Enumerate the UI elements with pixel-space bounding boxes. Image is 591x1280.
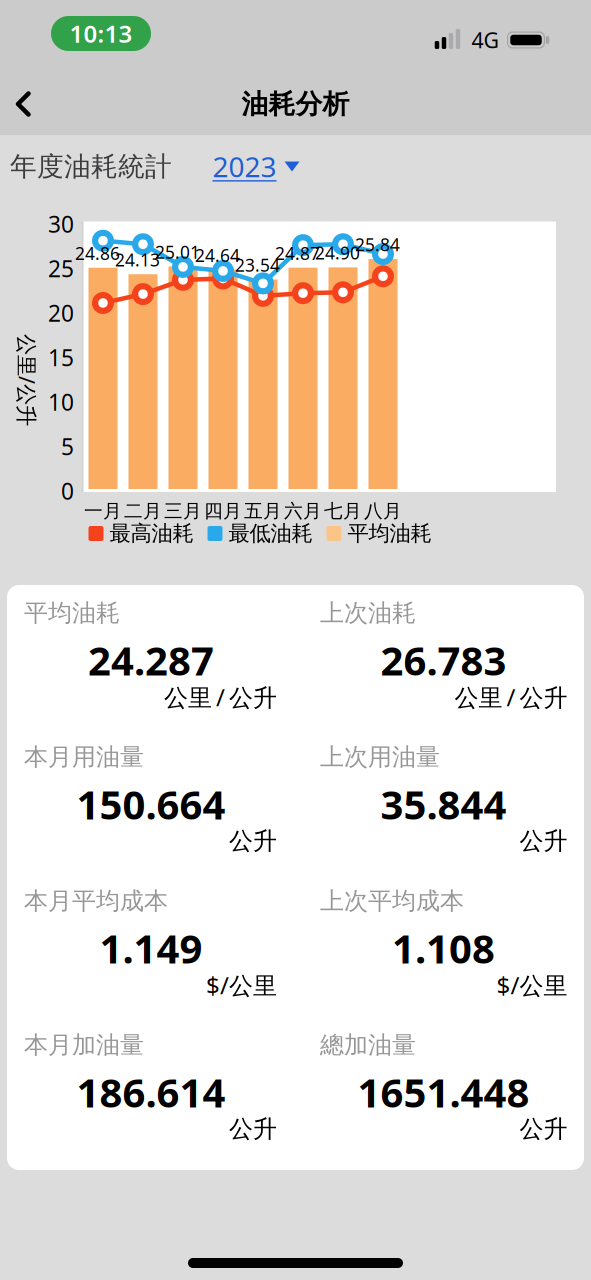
- staticText: 4G: [471, 26, 499, 54]
- staticText: 25.01: [155, 240, 200, 263]
- staticText: 公里 / 公升: [454, 681, 567, 713]
- staticText: 24.86: [75, 242, 120, 265]
- staticText: 本月用油量: [24, 742, 144, 772]
- staticText: 六月: [284, 499, 322, 522]
- staticText: 油耗分析: [241, 88, 349, 120]
- staticText: 二月: [124, 499, 162, 522]
- staticText: 上次油耗: [320, 598, 416, 628]
- staticText: 1651.448: [357, 1065, 529, 1118]
- staticText: 24.90: [315, 241, 360, 264]
- staticText: 最低油耗: [228, 520, 312, 547]
- staticText: 三月: [164, 499, 202, 522]
- staticText: 23.54: [235, 253, 280, 276]
- staticText: 10: [48, 387, 74, 417]
- staticText: 2023: [212, 148, 276, 185]
- staticText: 26.783: [380, 633, 506, 686]
- staticText: $/公里: [206, 969, 277, 1001]
- staticText: 公里/公升: [0, 366, 73, 394]
- staticText: 四月: [204, 499, 242, 522]
- staticText: 186.614: [76, 1065, 225, 1118]
- staticText: 總加油量: [320, 1030, 416, 1060]
- staticText: 10:13: [69, 18, 132, 49]
- staticText: 1.108: [392, 921, 495, 974]
- staticText: 公升: [519, 1114, 567, 1144]
- staticText: 24.87: [275, 242, 320, 265]
- staticText: 八月: [364, 499, 402, 522]
- staticText: 本月平均成本: [24, 886, 168, 916]
- staticText: 24.287: [88, 633, 214, 686]
- staticText: 150.664: [76, 777, 225, 830]
- staticText: 30: [48, 209, 74, 239]
- staticText: 20: [48, 298, 74, 328]
- staticText: 0: [61, 476, 74, 506]
- staticText: 24.13: [115, 248, 160, 271]
- staticText: 5: [61, 431, 74, 461]
- staticText: $/公里: [496, 969, 567, 1001]
- staticText: 15: [48, 342, 74, 372]
- button[interactable]: 2023: [212, 148, 299, 185]
- staticText: 公升: [519, 826, 567, 856]
- staticText: 公升: [229, 1114, 277, 1144]
- staticText: 公升: [229, 826, 277, 856]
- staticText: 最高油耗: [109, 520, 193, 547]
- staticText: 25.84: [355, 233, 400, 256]
- staticText: 24.64: [195, 244, 240, 267]
- staticText: 35.844: [380, 777, 506, 830]
- staticText: 一月: [84, 499, 122, 522]
- staticText: 本月加油量: [24, 1030, 144, 1060]
- staticText: 1.149: [99, 921, 202, 974]
- button[interactable]: Back: [7, 83, 45, 125]
- staticText: 公里 / 公升: [164, 681, 277, 713]
- staticText: 上次用油量: [320, 742, 440, 772]
- staticText: 七月: [324, 499, 362, 522]
- staticText: 上次平均成本: [320, 886, 464, 916]
- staticText: 平均油耗: [24, 598, 120, 628]
- staticText: 25: [48, 253, 74, 283]
- staticText: 五月: [244, 499, 282, 522]
- staticText: 平均油耗: [347, 520, 431, 547]
- staticText: 年度油耗統計: [10, 150, 172, 183]
